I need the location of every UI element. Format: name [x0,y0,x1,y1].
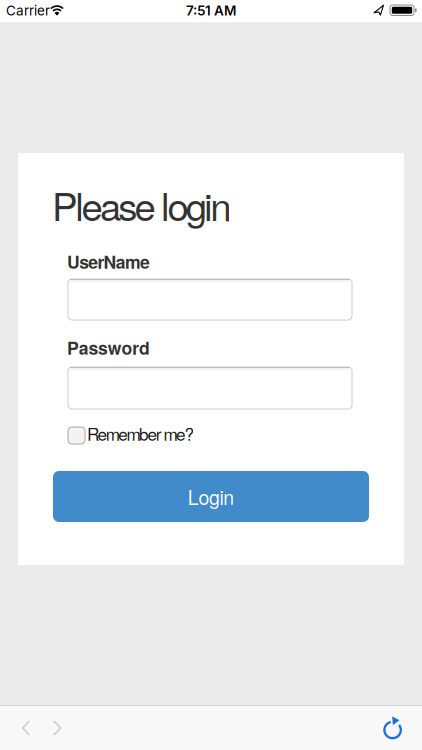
button[interactable] [68,367,352,409]
staticText: Please login [52,177,231,232]
button[interactable] [68,279,352,320]
staticText: Password [67,335,150,360]
staticText: Login [188,482,234,510]
button[interactable]: Remember me? [68,424,208,446]
staticText: Carrier [6,2,50,19]
button[interactable]: Login [53,471,369,522]
staticText: Remember me? [87,421,194,446]
button[interactable] [16,718,36,738]
button[interactable] [47,718,67,738]
staticText: UserName [67,249,150,274]
button[interactable] [380,717,406,743]
staticText: 7:51 AM [186,2,236,19]
